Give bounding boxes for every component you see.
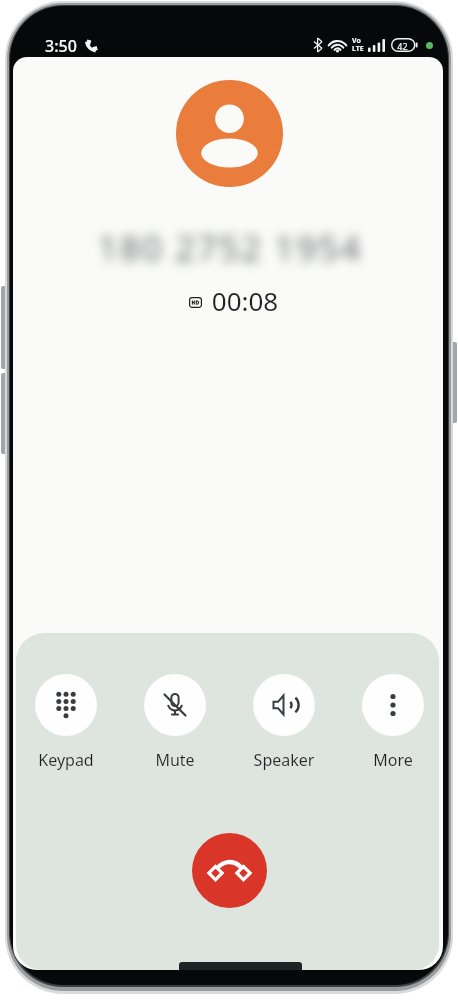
button[interactable] [253,674,315,736]
button[interactable] [362,674,424,736]
staticText: 00:08 [210,283,280,315]
staticText: 3:50 [45,35,77,57]
button[interactable] [35,674,97,736]
button[interactable]: Speaker [234,749,334,771]
button[interactable]: Keypad [16,749,116,771]
button[interactable] [144,674,206,736]
staticText: Vo [352,36,361,46]
staticText: 42 [394,40,411,51]
staticText: LTE [352,44,364,54]
button[interactable] [192,833,267,908]
button[interactable]: Mute [125,749,225,771]
button[interactable]: More [343,749,443,771]
staticText: 180 2752 1954 [69,224,391,266]
